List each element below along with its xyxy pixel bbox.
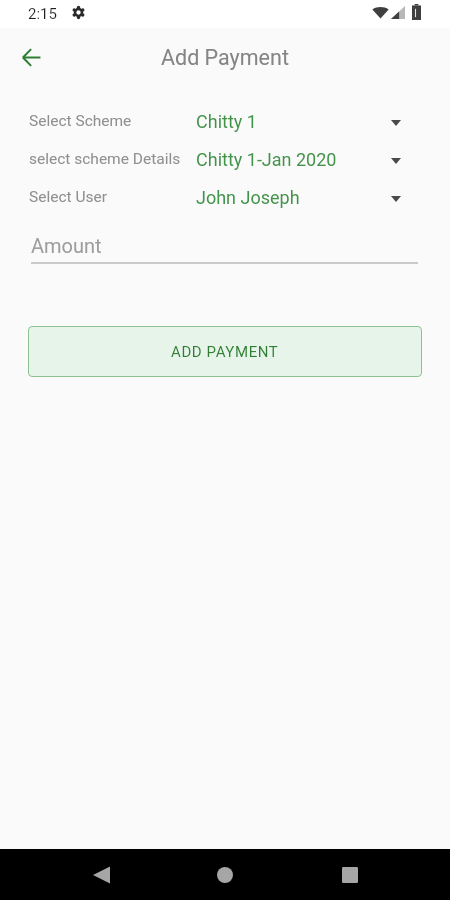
staticText: Amount — [31, 234, 102, 257]
staticText: John Joseph — [196, 187, 300, 208]
button[interactable]: Back — [11, 37, 51, 77]
button[interactable]: Select Scheme — [0, 113, 450, 143]
staticText: Add Payment — [161, 45, 289, 70]
button[interactable]: ADD PAYMENT — [28, 326, 422, 377]
staticText: Chitty 1 — [196, 111, 257, 132]
staticText: Select User — [29, 188, 107, 206]
staticText: Select Scheme — [29, 112, 132, 130]
button[interactable]: Back — [77, 851, 125, 899]
button[interactable]: Recents — [326, 851, 374, 899]
staticText: ADD PAYMENT — [171, 343, 279, 361]
button[interactable]: select scheme Details — [0, 151, 450, 181]
staticText: select scheme Details — [29, 150, 181, 168]
button[interactable]: Home — [201, 851, 249, 899]
button[interactable]: Amount input field — [31, 232, 418, 264]
staticText: Chitty 1-Jan 2020 — [196, 149, 337, 170]
staticText: 2:15 — [28, 5, 57, 23]
button[interactable]: Select User — [0, 189, 450, 219]
